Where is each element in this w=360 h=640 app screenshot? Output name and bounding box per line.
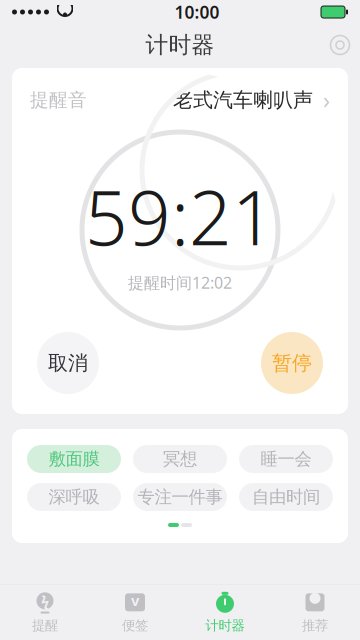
staticText: 老式汽车喇叭声 (173, 88, 313, 112)
staticText: 敷面膜 (48, 448, 99, 470)
button[interactable]: 计时器 (180, 585, 270, 640)
staticText: 10:00 (174, 0, 219, 23)
staticText: 深呼吸 (48, 486, 99, 508)
staticText: 专注一件事 (137, 486, 222, 508)
staticText: 冥想 (163, 448, 197, 470)
staticText: 提醒音 (30, 88, 87, 111)
button[interactable]: 专注一件事 (133, 483, 227, 511)
button[interactable]: 睡一会 (239, 445, 333, 473)
staticText: 睡一会 (260, 448, 311, 470)
button[interactable]: 敷面膜 (27, 445, 121, 473)
staticText: ϟ (41, 591, 49, 611)
staticText: 提醒时间12:02 (128, 272, 232, 293)
staticText: › (317, 85, 330, 115)
staticText: 暂停 (272, 351, 312, 375)
staticText: 59:21 (85, 167, 275, 266)
staticText: 取消 (48, 351, 88, 375)
staticText: 提醒 (32, 617, 58, 634)
button[interactable]: ϟ (0, 585, 90, 640)
button[interactable]: v (90, 585, 180, 640)
staticText: 推荐 (302, 617, 328, 634)
button[interactable]: 推荐 (270, 585, 360, 640)
staticText: 计时器 (205, 617, 244, 634)
staticText: 自由时间 (252, 486, 320, 508)
button[interactable]: 自由时间 (239, 483, 333, 511)
staticText: 便签 (122, 617, 148, 634)
button[interactable]: 深呼吸 (27, 483, 121, 511)
button[interactable]: 冥想 (133, 445, 227, 473)
button[interactable]: 提醒音 (12, 76, 348, 124)
button[interactable]: 暂停 (261, 332, 323, 394)
button[interactable]: 设置 (320, 25, 360, 65)
staticText: v (131, 591, 139, 610)
staticText: 计时器 (145, 31, 214, 59)
button[interactable]: 取消 (37, 332, 99, 394)
